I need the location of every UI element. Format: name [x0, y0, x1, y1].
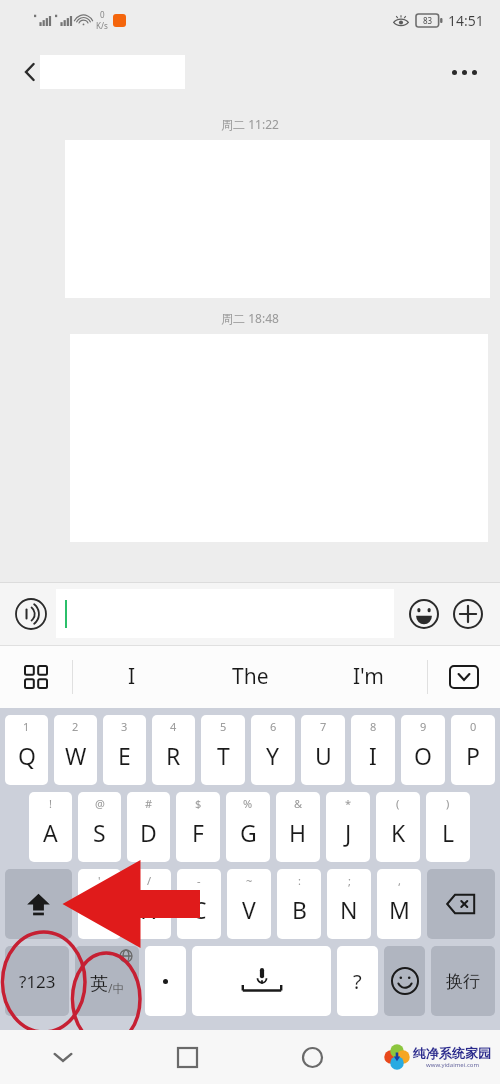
button[interactable]: 0: [451, 715, 495, 785]
staticText: $: [195, 796, 202, 811]
staticText: I: [369, 740, 377, 771]
staticText: 6: [270, 719, 277, 734]
staticText: W: [65, 740, 87, 771]
button[interactable]: %: [226, 792, 270, 862]
button[interactable]: [56, 589, 394, 638]
button[interactable]: I: [73, 645, 191, 708]
button[interactable]: 7: [301, 715, 345, 785]
staticText: Z: [93, 894, 107, 925]
staticText: S: [93, 817, 106, 848]
staticText: 英: [90, 973, 108, 996]
button[interactable]: $: [176, 792, 220, 862]
staticText: X: [142, 894, 156, 925]
button[interactable]: ~: [227, 869, 271, 939]
staticText: 周二 11:22: [0, 116, 500, 132]
button[interactable]: The: [191, 645, 309, 708]
staticText: H: [289, 817, 307, 848]
button[interactable]: Backspace: [427, 869, 495, 939]
staticText: 14:51: [448, 11, 484, 30]
staticText: @: [95, 796, 105, 811]
button[interactable]: 换行: [431, 946, 495, 1016]
button[interactable]: Home: [250, 1030, 375, 1084]
button[interactable]: Shift: [5, 869, 72, 939]
button[interactable]: ): [426, 792, 470, 862]
button[interactable]: More options: [440, 48, 488, 96]
staticText: U: [315, 740, 332, 771]
button[interactable]: Recent apps: [125, 1030, 250, 1084]
staticText: 换行: [446, 971, 480, 992]
staticText: P: [466, 740, 480, 771]
staticText: The: [232, 662, 269, 691]
button[interactable]: ;: [327, 869, 371, 939]
staticText: ?: [353, 968, 362, 995]
staticText: C: [192, 894, 207, 925]
button[interactable]: #: [127, 792, 170, 862]
staticText: M: [389, 894, 410, 925]
button[interactable]: 3: [103, 715, 146, 785]
staticText: -: [197, 873, 201, 888]
staticText: 8: [370, 719, 377, 734]
button[interactable]: Hide keyboard: [428, 645, 500, 708]
staticText: V: [242, 894, 256, 925]
staticText: I'm: [353, 662, 384, 691]
button[interactable]: Back: [0, 1030, 125, 1084]
button[interactable]: I'm: [309, 645, 427, 708]
staticText: ,: [398, 873, 401, 888]
button[interactable]: *: [326, 792, 370, 862]
button[interactable]: 1: [5, 715, 48, 785]
staticText: 0: [470, 719, 477, 734]
staticText: :: [298, 873, 301, 888]
staticText: Q: [18, 740, 36, 771]
button[interactable]: ?123: [5, 946, 69, 1016]
button[interactable]: 2: [54, 715, 97, 785]
staticText: B: [292, 894, 307, 925]
button[interactable]: ,: [377, 869, 421, 939]
staticText: G: [240, 817, 257, 848]
button[interactable]: @: [78, 792, 121, 862]
button[interactable]: Back: [8, 50, 52, 94]
button[interactable]: 9: [401, 715, 445, 785]
staticText: J: [345, 817, 352, 848]
button[interactable]: Keyboard menu: [0, 645, 72, 708]
button[interactable]: [145, 946, 186, 1016]
staticText: K: [391, 817, 406, 848]
staticText: 周二 18:48: [0, 310, 500, 326]
staticText: 83: [423, 15, 433, 26]
button[interactable]: Emoji keyboard: [384, 946, 425, 1016]
staticText: /: [147, 873, 152, 888]
button[interactable]: !: [29, 792, 72, 862]
button[interactable]: ': [78, 869, 121, 939]
staticText: 7: [320, 719, 327, 734]
staticText: L: [442, 817, 455, 848]
staticText: D: [140, 817, 157, 848]
staticText: !: [49, 796, 52, 811]
staticText: Y: [266, 740, 280, 771]
button[interactable]: 8: [351, 715, 395, 785]
button[interactable]: 5: [201, 715, 245, 785]
button[interactable]: Switch language: [75, 946, 139, 1016]
button[interactable]: Space: [192, 946, 331, 1016]
staticText: *: [345, 796, 352, 811]
button[interactable]: 6: [251, 715, 295, 785]
button[interactable]: 4: [152, 715, 195, 785]
button[interactable]: &: [276, 792, 320, 862]
staticText: ': [98, 873, 101, 888]
staticText: %: [243, 796, 253, 811]
staticText: O: [414, 740, 432, 771]
button[interactable]: -: [177, 869, 221, 939]
button[interactable]: More functions: [446, 592, 490, 636]
staticText: R: [166, 740, 181, 771]
button[interactable]: /: [127, 869, 171, 939]
button[interactable]: Emoji: [402, 592, 446, 636]
staticText: ;: [348, 873, 351, 888]
button[interactable]: (: [376, 792, 420, 862]
staticText: &: [294, 796, 303, 811]
button[interactable]: :: [277, 869, 321, 939]
staticText: E: [118, 740, 131, 771]
staticText: 1: [23, 719, 30, 734]
button[interactable]: ?: [337, 946, 378, 1016]
button[interactable]: Voice input: [10, 593, 52, 635]
staticText: T: [217, 740, 230, 771]
